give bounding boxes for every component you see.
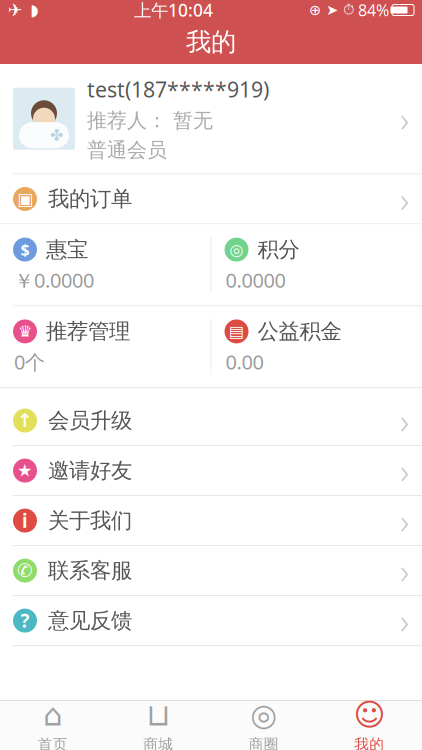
button[interactable]: ⊔ — [105, 701, 211, 750]
staticText: 商城 — [143, 735, 173, 750]
staticText: 84% — [358, 0, 389, 21]
staticText: test(187*****919) — [87, 75, 269, 103]
staticText: ➤ — [326, 2, 338, 18]
button[interactable]: ▤ — [211, 306, 422, 387]
staticText: ↑ — [17, 410, 33, 431]
staticText: › — [400, 96, 409, 142]
staticText: › — [400, 448, 409, 494]
button[interactable]: i — [0, 496, 422, 545]
staticText: ◎ — [250, 698, 277, 732]
button[interactable]: ◎ — [211, 224, 422, 305]
staticText: ♛ — [18, 322, 32, 340]
staticText: ￥0.0000 — [14, 267, 94, 293]
staticText: 会员升级 — [48, 407, 132, 434]
staticText: › — [400, 498, 409, 544]
staticText: 我的 — [354, 735, 384, 750]
staticText: ⌂ — [43, 698, 62, 732]
button[interactable]: $ — [0, 224, 210, 305]
staticText: 公益积金 — [257, 318, 341, 344]
button[interactable]: ⌂ — [0, 701, 105, 750]
staticText: 意见反馈 — [48, 607, 132, 634]
staticText: 上午10:04 — [134, 0, 213, 21]
staticText: ★ — [17, 461, 33, 480]
staticText: 0.0000 — [225, 267, 285, 293]
button[interactable]: ↑ — [0, 396, 422, 445]
staticText: $ — [20, 239, 29, 260]
button[interactable]: ? — [0, 596, 422, 645]
button[interactable]: ☺ — [316, 701, 422, 750]
button[interactable]: ★ — [0, 446, 422, 495]
staticText: ◗ — [30, 1, 38, 19]
staticText: 普通会员 — [87, 138, 167, 162]
staticText: › — [400, 398, 409, 444]
staticText: ☺ — [353, 698, 385, 732]
staticText: ? — [20, 608, 29, 633]
staticText: 推荐人： 暂无 — [87, 108, 213, 133]
staticText: ✈ — [8, 0, 23, 20]
staticText: 商圈 — [249, 735, 279, 750]
staticText: › — [400, 176, 409, 222]
staticText: 关于我们 — [48, 507, 132, 534]
staticText: 推荐管理 — [46, 318, 130, 344]
staticText: 首页 — [38, 735, 68, 750]
staticText: 0个 — [14, 348, 45, 375]
staticText: 0.00 — [225, 348, 263, 375]
staticText: ◎ — [229, 240, 243, 259]
staticText: › — [400, 548, 409, 594]
staticText: 联系客服 — [48, 557, 132, 584]
staticText: ✤ — [50, 126, 63, 144]
staticText: 邀请好友 — [48, 457, 132, 484]
staticText: ▤ — [229, 322, 244, 340]
staticText: ⊕ — [309, 2, 321, 18]
staticText: 我的订单 — [48, 186, 132, 212]
staticText: ✆ — [17, 560, 33, 581]
button[interactable]: ♛ — [0, 306, 210, 387]
staticText: 积分 — [257, 236, 299, 263]
staticText: ▣ — [17, 189, 33, 209]
staticText: › — [400, 598, 409, 644]
staticText: 惠宝 — [46, 236, 88, 263]
staticText: ⏱ — [343, 3, 354, 17]
button[interactable]: ✤ — [0, 64, 422, 173]
button[interactable]: ✆ — [0, 546, 422, 595]
staticText: ⊔ — [146, 698, 170, 732]
button[interactable]: ◎ — [211, 701, 316, 750]
staticText: 我的 — [186, 26, 236, 57]
staticText: i — [22, 508, 28, 533]
button[interactable]: ▣ — [0, 174, 422, 223]
